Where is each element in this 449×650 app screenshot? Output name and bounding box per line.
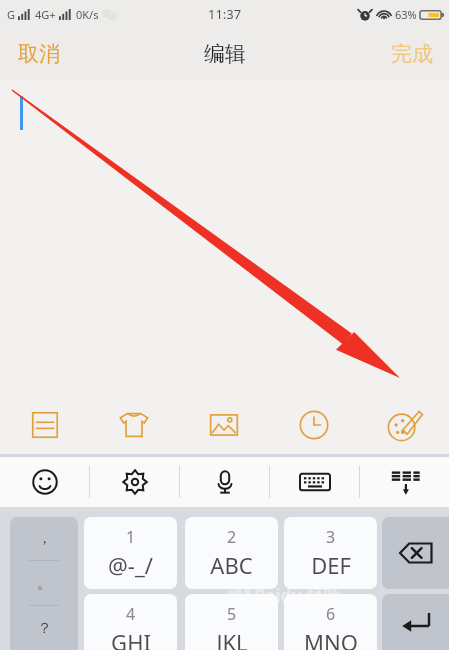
button[interactable]: 3 [284, 517, 377, 589]
staticText: Baidu 经验 [254, 584, 341, 607]
button[interactable]: Backspace [382, 517, 449, 589]
button[interactable]: Keyboard layout [270, 457, 359, 507]
button[interactable]: Style [89, 396, 179, 454]
button[interactable]: Emoji [0, 457, 89, 507]
staticText: ？ [37, 619, 52, 638]
staticText: 取消 [18, 41, 60, 67]
button[interactable]: Hide keyboard [360, 457, 449, 507]
staticText: 1 [126, 526, 136, 548]
button[interactable]: Enter [382, 594, 449, 650]
staticText: 2 [227, 526, 237, 548]
staticText: 完成 [391, 41, 433, 67]
staticText: MNO [304, 627, 358, 650]
staticText: ABC [210, 550, 253, 580]
button[interactable]: Draw [359, 396, 449, 454]
button[interactable]: Punctuation [10, 517, 78, 650]
staticText: DEF [311, 550, 351, 580]
button[interactable]: History [269, 396, 359, 454]
staticText: G [7, 7, 16, 22]
button[interactable]: 完成 [375, 28, 449, 80]
button[interactable]: 4 [84, 594, 177, 650]
staticText: @-_/ [108, 550, 153, 580]
staticText: 3 [326, 526, 336, 548]
button[interactable]: 1 [84, 517, 177, 589]
button[interactable]: 6 [284, 594, 377, 650]
staticText: 5 [227, 603, 237, 625]
button[interactable]: 5 [185, 594, 278, 650]
staticText: 63% [395, 7, 417, 22]
staticText: 编辑 [204, 41, 246, 67]
staticText: 6 [326, 603, 336, 625]
staticText: 4 [126, 603, 136, 625]
staticText: JKL [216, 627, 248, 650]
button[interactable]: 取消 [0, 28, 78, 80]
staticText: 11:37 [208, 5, 242, 23]
staticText: 0K/s [76, 7, 99, 22]
staticText: ， [37, 529, 52, 548]
button[interactable]: 2 [185, 517, 278, 589]
staticText: GHI [111, 627, 151, 650]
staticText: 。 [37, 574, 52, 593]
button[interactable]: Settings [90, 457, 179, 507]
staticText: 4G+ [35, 7, 56, 22]
button[interactable]: Lines [0, 396, 89, 454]
button[interactable]: Voice input [180, 457, 269, 507]
button[interactable]: Image [179, 396, 269, 454]
